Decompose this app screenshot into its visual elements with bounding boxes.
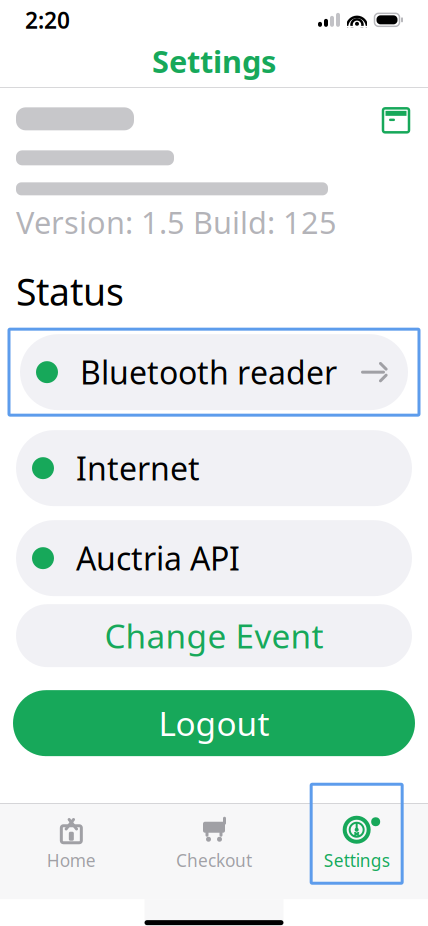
button[interactable]: Change Event	[16, 604, 412, 667]
button[interactable]: Console	[382, 90, 412, 134]
staticText: Settings	[152, 41, 276, 81]
staticText: Change Event	[104, 613, 323, 658]
button[interactable]: Auctria API	[16, 520, 412, 596]
button[interactable]: Settings	[0, 43, 428, 79]
staticText: 2:20	[25, 5, 70, 35]
staticText: Checkout	[176, 849, 252, 872]
staticText: Settings	[324, 849, 390, 872]
button[interactable]: Bluetooth reader	[20, 334, 408, 410]
staticText: Home	[47, 849, 96, 872]
staticText: Status	[16, 267, 124, 316]
button[interactable]: Internet	[16, 430, 412, 506]
staticText: Bluetooth reader	[80, 351, 337, 393]
staticText: Auctria API	[76, 537, 240, 579]
button[interactable]: Logout	[13, 690, 415, 756]
staticText: Version: 1.5 Build: 125	[16, 202, 337, 242]
button[interactable]: Settings	[285, 812, 428, 876]
staticText: Logout	[158, 701, 269, 745]
button[interactable]: Checkout	[143, 812, 285, 876]
staticText: Internet	[76, 447, 200, 489]
button[interactable]: Home	[0, 812, 143, 876]
